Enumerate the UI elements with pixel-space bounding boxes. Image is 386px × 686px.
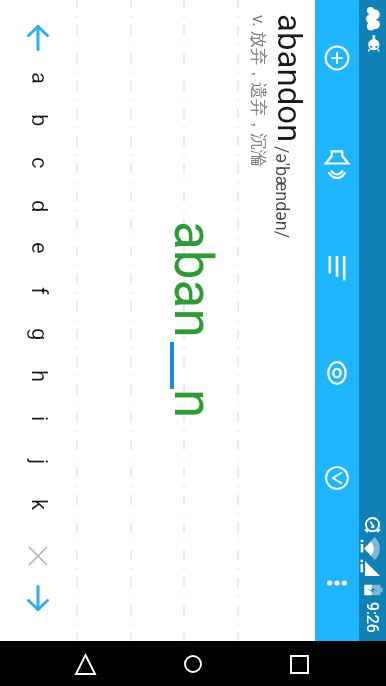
- button[interactable]: Word list: [315, 246, 359, 290]
- staticText: a: [26, 72, 52, 84]
- button[interactable]: Pronounce: [315, 143, 359, 187]
- staticText: v. 放弃，遗弃，沉溣: [248, 15, 269, 168]
- button[interactable]: h: [21, 358, 57, 394]
- button[interactable]: i: [21, 401, 57, 437]
- button[interactable]: g: [21, 316, 57, 352]
- staticText: b: [26, 114, 52, 127]
- staticText: n: [162, 389, 224, 419]
- button[interactable]: Collapse: [315, 456, 359, 500]
- button[interactable]: Recent apps: [278, 642, 322, 686]
- button[interactable]: k: [21, 487, 57, 523]
- button[interactable]: More options: [315, 561, 359, 605]
- button[interactable]: j: [21, 444, 57, 480]
- button[interactable]: Add new word: [315, 36, 359, 80]
- staticText: c: [26, 157, 52, 169]
- staticText: e: [26, 242, 52, 254]
- button[interactable]: c: [21, 145, 57, 181]
- staticText: g: [26, 328, 52, 341]
- button[interactable]: Scroll down: [18, 578, 58, 618]
- button[interactable]: Record: [315, 351, 359, 395]
- staticText: d: [26, 200, 52, 213]
- button[interactable]: e: [21, 230, 57, 266]
- staticText: i: [26, 416, 52, 422]
- button[interactable]: f: [21, 273, 57, 309]
- staticText: aban: [162, 221, 224, 338]
- staticText: /ə'bændən/: [272, 146, 293, 239]
- button[interactable]: Back: [64, 642, 108, 686]
- button[interactable]: Clear: [18, 536, 58, 576]
- staticText: h: [26, 370, 52, 383]
- staticText: f: [26, 287, 52, 295]
- button[interactable]: b: [21, 102, 57, 138]
- button[interactable]: Home: [171, 642, 215, 686]
- button[interactable]: a: [21, 60, 57, 96]
- button[interactable]: Scroll up: [18, 18, 58, 58]
- staticText: j: [26, 459, 52, 465]
- staticText: abandon: [270, 14, 309, 143]
- staticText: k: [26, 499, 52, 511]
- staticText: 9:26: [363, 602, 382, 633]
- button[interactable]: d: [21, 188, 57, 224]
